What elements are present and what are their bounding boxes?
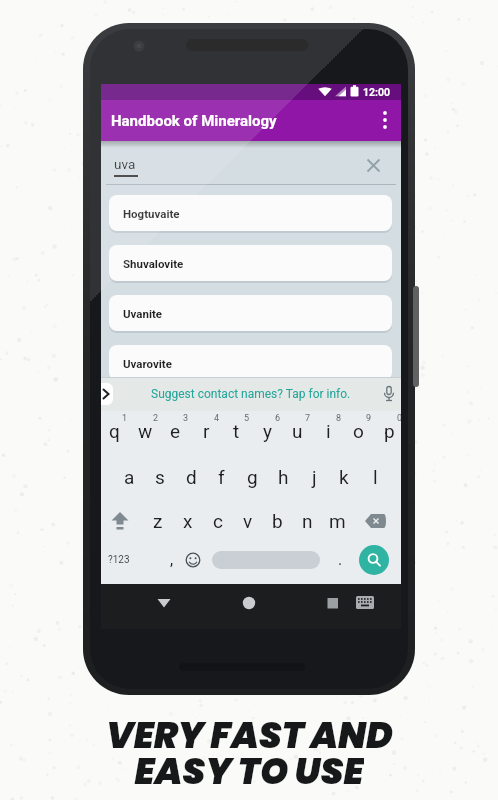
staticText: Uvarovite xyxy=(123,357,172,370)
button[interactable]: Suggest contact names? Tap for info. xyxy=(101,377,401,411)
staticText: v xyxy=(243,510,253,532)
button[interactable]: uva xyxy=(114,153,234,175)
button[interactable]: w xyxy=(131,414,159,448)
staticText: d xyxy=(186,466,197,488)
staticText: s xyxy=(155,466,165,488)
staticText: y xyxy=(263,420,272,442)
staticText: 8 xyxy=(336,413,342,424)
staticText: k xyxy=(339,466,349,488)
button[interactable] xyxy=(382,386,396,403)
staticText: c xyxy=(213,510,223,532)
button[interactable]: n xyxy=(293,504,321,538)
button[interactable]: i xyxy=(314,414,342,448)
button[interactable]: t xyxy=(222,414,250,448)
staticText: . xyxy=(338,550,343,569)
staticText: x xyxy=(183,510,193,532)
staticText: h xyxy=(278,466,289,488)
staticText: EASY TO USE xyxy=(134,746,364,787)
staticText: ?123 xyxy=(108,554,130,566)
staticText: 9 xyxy=(366,413,372,424)
button[interactable] xyxy=(325,595,341,611)
button[interactable]: d xyxy=(177,460,205,494)
button[interactable]: u xyxy=(283,414,311,448)
button[interactable]: m xyxy=(323,504,351,538)
button[interactable]: o xyxy=(344,414,372,448)
button[interactable]: z xyxy=(144,504,172,538)
staticText: 7 xyxy=(305,413,311,424)
staticText: Handbook of Mineralogy xyxy=(111,112,277,130)
button[interactable]: x xyxy=(174,504,202,538)
button[interactable]: s xyxy=(146,460,174,494)
staticText: t xyxy=(233,420,240,442)
staticText: w xyxy=(138,420,153,442)
button[interactable]: q xyxy=(101,414,128,448)
staticText: Uvanite xyxy=(123,307,163,320)
staticText: 3 xyxy=(183,413,189,424)
button[interactable]: v xyxy=(234,504,262,538)
button[interactable] xyxy=(241,595,257,611)
button[interactable]: ?123 xyxy=(102,550,136,570)
button[interactable]: Uvarovite xyxy=(109,345,392,381)
staticText: u xyxy=(292,420,303,442)
staticText: 5 xyxy=(244,413,250,424)
button[interactable] xyxy=(212,551,320,569)
button[interactable] xyxy=(156,595,172,611)
staticText: 12:00 xyxy=(363,86,391,98)
staticText: e xyxy=(170,420,181,442)
button[interactable]: . xyxy=(332,548,348,570)
staticText: g xyxy=(247,466,258,488)
button[interactable] xyxy=(365,514,386,528)
button[interactable] xyxy=(379,108,391,132)
staticText: z xyxy=(153,510,163,532)
staticText: 0 xyxy=(397,413,401,424)
button[interactable]: Shuvalovite xyxy=(109,245,392,281)
button[interactable]: Hogtuvaite xyxy=(109,195,392,231)
staticText: i xyxy=(326,420,331,442)
button[interactable]: r xyxy=(192,414,220,448)
button[interactable] xyxy=(110,512,130,530)
button[interactable]: p xyxy=(375,414,401,448)
staticText: r xyxy=(203,420,210,442)
button[interactable]: c xyxy=(204,504,232,538)
staticText: o xyxy=(353,420,364,442)
button[interactable]: j xyxy=(300,460,328,494)
button[interactable]: l xyxy=(361,460,389,494)
button[interactable]: h xyxy=(269,460,297,494)
staticText: q xyxy=(109,420,120,442)
button[interactable] xyxy=(356,596,374,610)
staticText: 2 xyxy=(153,413,159,424)
staticText: VERY FAST AND xyxy=(106,710,393,751)
staticText: 6 xyxy=(275,413,281,424)
button[interactable]: e xyxy=(161,414,189,448)
staticText: uva xyxy=(114,156,136,172)
button[interactable]: , xyxy=(164,548,180,570)
staticText: 1 xyxy=(122,413,128,424)
staticText: , xyxy=(170,550,174,569)
staticText: l xyxy=(373,466,378,488)
staticText: b xyxy=(272,510,283,532)
button[interactable]: k xyxy=(330,460,358,494)
staticText: p xyxy=(384,420,395,442)
staticText: Hogtuvaite xyxy=(123,207,180,220)
staticText: j xyxy=(312,466,317,488)
staticText: n xyxy=(302,510,313,532)
button[interactable]: y xyxy=(253,414,281,448)
button[interactable] xyxy=(366,158,381,173)
button[interactable] xyxy=(359,545,389,575)
button[interactable]: f xyxy=(207,460,235,494)
staticText: Suggest contact names? Tap for info. xyxy=(151,387,351,401)
button[interactable]: b xyxy=(263,504,291,538)
button[interactable]: Uvanite xyxy=(109,295,392,331)
staticText: a xyxy=(124,466,135,488)
staticText: m xyxy=(329,510,346,532)
button[interactable]: Handbook of Mineralogy xyxy=(101,100,401,141)
button[interactable] xyxy=(185,552,201,568)
staticText: 4 xyxy=(214,413,220,424)
staticText: f xyxy=(218,466,225,488)
staticText: Shuvalovite xyxy=(123,257,184,270)
button[interactable]: a xyxy=(115,460,143,494)
button[interactable]: g xyxy=(238,460,266,494)
